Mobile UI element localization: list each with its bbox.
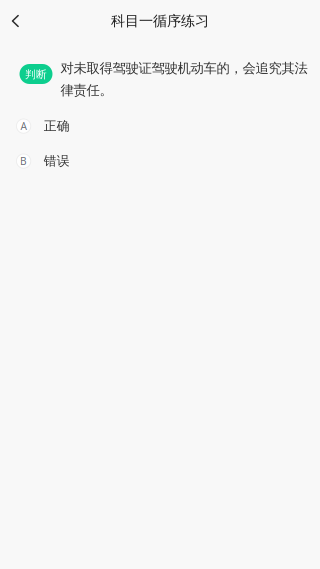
staticText: A bbox=[21, 119, 27, 133]
staticText: 错误 bbox=[44, 153, 70, 169]
staticText: 判断 bbox=[25, 68, 47, 81]
button[interactable]: B. 错误 bbox=[0, 144, 320, 179]
button[interactable]: A. 正确 bbox=[0, 109, 320, 144]
staticText: 科目一循序练习 bbox=[111, 12, 209, 30]
staticText: 对未取得驾驶证驾驶机动车的，会追究其法律责任。 bbox=[60, 60, 307, 99]
staticText: B bbox=[20, 154, 27, 168]
staticText: 正确 bbox=[44, 118, 70, 134]
button[interactable]: Back bbox=[0, 0, 32, 42]
